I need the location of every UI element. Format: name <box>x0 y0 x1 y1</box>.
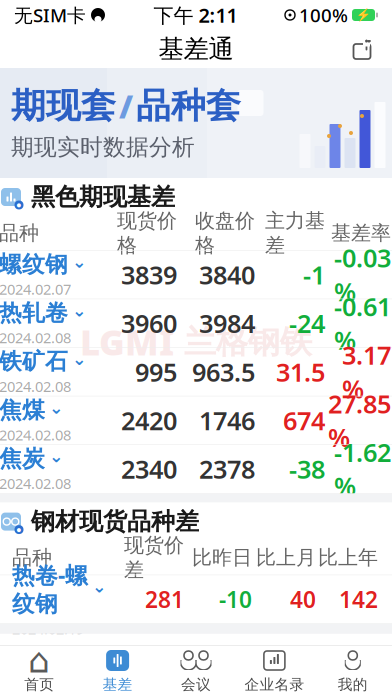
staticText: ⌄ <box>49 398 64 417</box>
staticText: 焦炭 <box>0 445 45 473</box>
staticText: 企业名录 <box>244 675 304 693</box>
staticText: 焦煤 <box>0 396 45 424</box>
button[interactable]: 企业名录 <box>235 646 314 696</box>
staticText: ⌄ <box>72 252 87 272</box>
staticText: 3984 <box>199 306 255 340</box>
staticText: 3840 <box>199 258 255 291</box>
staticText: ⌄ <box>72 301 87 320</box>
staticText: 下午 2:11 <box>153 2 237 28</box>
staticText: 2024.02.19 <box>12 619 84 638</box>
staticText: 首页 <box>24 675 54 693</box>
staticText: 现货价格 <box>117 208 177 257</box>
staticText: 3960 <box>121 306 177 340</box>
staticText: 963.5 <box>192 355 255 389</box>
staticText: 281 <box>145 584 184 614</box>
staticText: 期现套 <box>11 85 116 127</box>
button[interactable]: 螺纹钢 <box>0 251 392 299</box>
staticText: 品种 <box>0 221 39 245</box>
staticText: 40 <box>290 584 316 614</box>
staticText: ● <box>16 202 21 208</box>
staticText: 3839 <box>121 258 177 291</box>
button[interactable]: 分享 <box>340 32 384 66</box>
staticText: 2378 <box>199 452 255 486</box>
staticText: 27.85% <box>328 387 391 454</box>
button[interactable]: 基差 <box>78 646 157 696</box>
staticText: ● <box>16 527 21 533</box>
staticText: ⌂ <box>28 641 50 680</box>
staticText: 2420 <box>121 404 177 437</box>
staticText: 主力基差 <box>265 208 325 257</box>
staticText: 2340 <box>121 452 177 486</box>
staticText: -24 <box>289 306 325 340</box>
button[interactable]: 焦煤 <box>0 396 392 445</box>
staticText: 收盘价格 <box>195 208 255 257</box>
staticText: 期现实时数据分析 <box>11 133 195 161</box>
staticText: 黑色期现基差 <box>31 182 175 212</box>
staticText: 热轧卷 <box>0 299 68 327</box>
staticText: 2024.02.07 <box>0 279 71 299</box>
button[interactable]: 会议 <box>157 646 235 696</box>
staticText: 比上月 <box>256 545 316 570</box>
staticText: 现货价差 <box>124 533 184 582</box>
staticText: -1 <box>303 258 325 291</box>
staticText: 2024.02.08 <box>0 425 71 445</box>
staticText: ⌄ <box>72 349 87 369</box>
staticText: 热卷-螺纹钢 <box>12 560 88 618</box>
staticText: 螺纹钢 <box>0 250 68 278</box>
staticText: 无SIM卡 <box>14 3 86 27</box>
staticText: 兰格钢铁 <box>184 322 312 362</box>
staticText: 3.17% <box>342 338 391 405</box>
staticText: ⌄ <box>92 577 107 596</box>
staticText: 100% <box>299 3 348 27</box>
staticText: 2024.02.08 <box>0 376 71 396</box>
staticText: / <box>119 85 133 127</box>
staticText: 比上年 <box>318 545 378 570</box>
staticText: LGMI <box>80 319 174 365</box>
staticText: 会议 <box>181 675 211 693</box>
staticText: -10 <box>219 584 252 614</box>
staticText: ⚡ <box>356 8 371 22</box>
staticText: -1.62% <box>334 435 391 503</box>
button[interactable]: 我的 <box>314 646 392 696</box>
button[interactable]: ⌂ <box>0 646 78 696</box>
button[interactable]: 焦炭 <box>0 445 392 494</box>
staticText: 基差 <box>103 675 133 693</box>
button[interactable]: 热轧卷 <box>0 299 392 348</box>
staticText: 995 <box>135 355 177 389</box>
button[interactable]: 铁矿石 <box>0 348 392 396</box>
staticText: 品种 <box>12 545 52 570</box>
staticText: 品种套 <box>136 85 241 127</box>
staticText: 2024.02.08 <box>0 328 71 347</box>
staticText: 铁矿石 <box>0 348 68 375</box>
staticText: 674 <box>283 404 325 437</box>
button[interactable]: 热卷-螺纹钢 <box>0 575 392 624</box>
staticText: 我的 <box>338 675 368 693</box>
staticText: 比昨日 <box>192 545 252 570</box>
staticText: -38 <box>289 452 325 486</box>
staticText: ⌄ <box>49 446 64 466</box>
staticText: 钢材现货品种差 <box>31 507 199 536</box>
staticText: -0.61% <box>334 290 391 357</box>
staticText: 1746 <box>199 404 255 437</box>
staticText: 2024.02.08 <box>0 474 71 493</box>
staticText: 31.5 <box>276 355 325 389</box>
staticText: 基差率 <box>331 221 391 245</box>
staticText: 基差通 <box>158 33 233 64</box>
staticText: 142 <box>339 584 378 614</box>
staticText: -0.03% <box>334 241 391 308</box>
